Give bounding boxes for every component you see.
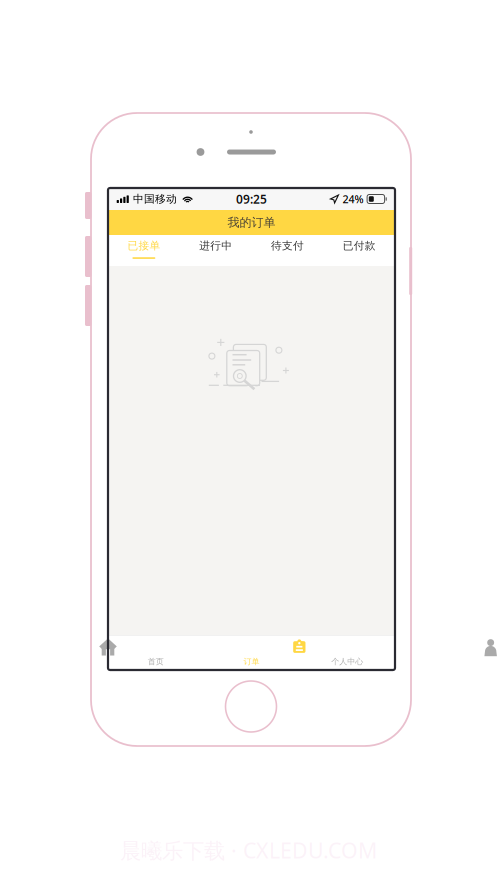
button[interactable]: 进行中 bbox=[180, 235, 252, 266]
staticText: 中国移动 bbox=[133, 192, 177, 205]
staticText: 个人中心 bbox=[331, 657, 363, 666]
staticText: 首页 bbox=[148, 657, 164, 666]
staticText: 我的订单 bbox=[227, 215, 275, 230]
staticText: 24% bbox=[343, 192, 364, 206]
staticText: 晨曦乐下载 · CXLEDU.COM bbox=[120, 836, 377, 864]
staticText: 已付款 bbox=[343, 239, 376, 252]
staticText: 进行中 bbox=[199, 239, 232, 252]
button[interactable]: 订单 bbox=[108, 635, 204, 670]
button[interactable]: 已接单 bbox=[108, 235, 180, 266]
staticText: 订单 bbox=[243, 657, 259, 666]
staticText: 09:25 bbox=[236, 191, 267, 207]
button[interactable]: 首页 bbox=[108, 635, 204, 670]
staticText: 已接单 bbox=[127, 239, 160, 252]
button[interactable]: 待支付 bbox=[251, 235, 323, 266]
button[interactable]: 已付款 bbox=[323, 235, 395, 266]
staticText: 待支付 bbox=[271, 239, 304, 252]
button[interactable]: 个人中心 bbox=[108, 635, 204, 670]
